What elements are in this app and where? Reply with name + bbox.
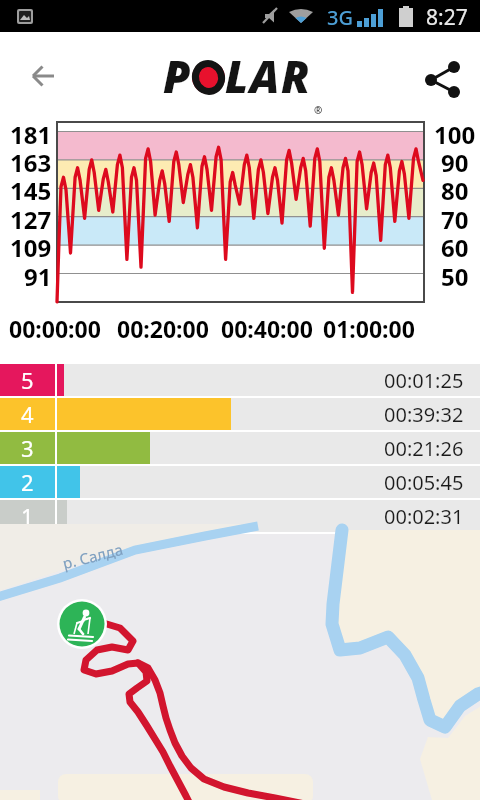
staticText: 1 xyxy=(21,501,34,531)
staticText: ® xyxy=(314,103,323,117)
staticText: 163 xyxy=(10,146,52,179)
staticText: 91 xyxy=(24,260,52,293)
button[interactable]: 4 xyxy=(0,398,480,430)
button[interactable] xyxy=(16,50,72,106)
staticText: р. Салда xyxy=(60,539,125,573)
button[interactable]: 5 xyxy=(0,364,480,396)
staticText: 90 xyxy=(441,146,469,179)
staticText: 01:00:00 xyxy=(323,313,415,344)
staticText: 00:02:31 xyxy=(384,503,464,530)
staticText: 70 xyxy=(441,203,469,236)
staticText: 5 xyxy=(21,365,34,395)
staticText: 100 xyxy=(434,118,476,151)
button[interactable] xyxy=(57,599,107,649)
staticText: 109 xyxy=(10,231,52,264)
staticText: 00:01:25 xyxy=(384,367,464,394)
staticText: 3 xyxy=(21,433,34,463)
staticText: 80 xyxy=(441,174,469,207)
button[interactable]: 1 xyxy=(0,500,480,532)
staticText: 127 xyxy=(10,203,52,236)
staticText: LAR xyxy=(225,46,312,106)
staticText: P xyxy=(163,46,192,106)
staticText: 50 xyxy=(441,260,469,293)
staticText: 60 xyxy=(441,231,469,264)
button[interactable]: 3 xyxy=(0,432,480,464)
staticText: 00:40:00 xyxy=(221,313,313,344)
staticText: 4 xyxy=(21,399,34,429)
staticText: 8:27 xyxy=(426,3,468,32)
staticText: 181 xyxy=(10,118,52,151)
staticText: 2 xyxy=(21,467,34,497)
button[interactable]: 2 xyxy=(0,466,480,498)
staticText: 00:20:00 xyxy=(117,313,209,344)
staticText: 00:21:26 xyxy=(384,435,464,462)
staticText: 00:05:45 xyxy=(384,469,464,496)
staticText: 00:39:32 xyxy=(384,401,464,428)
button[interactable] xyxy=(414,52,470,108)
staticText: 145 xyxy=(10,174,52,207)
staticText: 3G xyxy=(327,4,353,31)
staticText: 00:00:00 xyxy=(9,313,101,344)
